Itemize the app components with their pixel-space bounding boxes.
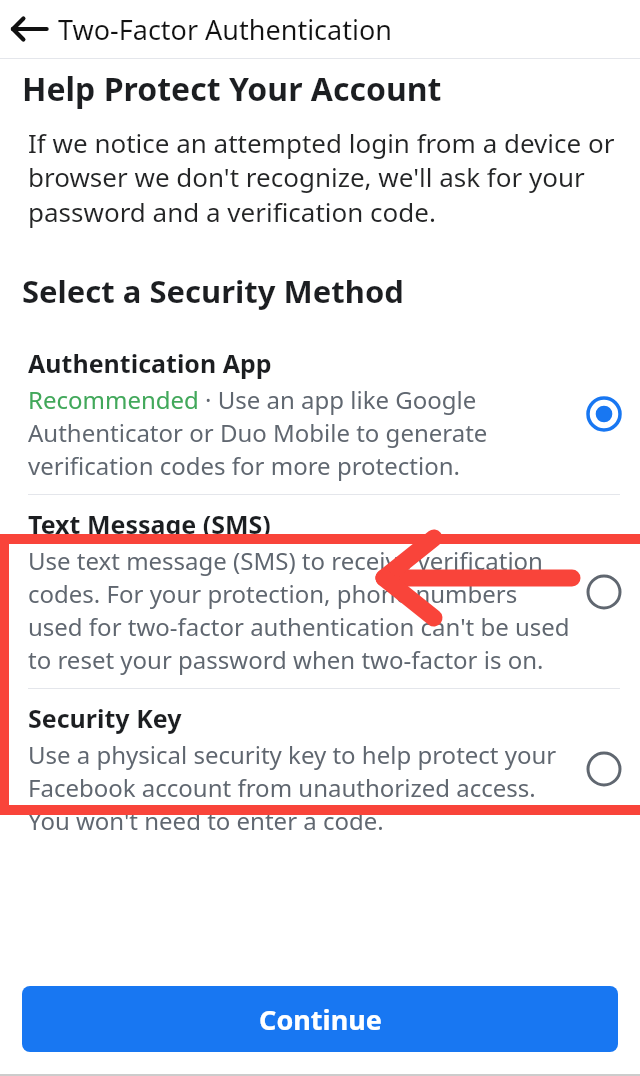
button[interactable]: Security Key [0, 689, 640, 849]
button[interactable]: Text Message (SMS) [0, 495, 640, 688]
staticText: Use a physical security key to help prot… [28, 738, 578, 837]
staticText: Select a Security Method [22, 270, 404, 312]
staticText: Help Protect Your Account [22, 67, 442, 111]
button[interactable]: Continue [22, 986, 618, 1052]
staticText: Two-Factor Authentication [58, 11, 392, 48]
staticText: If we notice an attempted login from a d… [28, 125, 618, 230]
staticText: Authentication App [28, 346, 272, 380]
button[interactable]: Back [0, 0, 58, 58]
staticText: Text Message (SMS) [28, 507, 271, 541]
staticText: Recommended · Use an app like Google Aut… [28, 383, 578, 482]
staticText: Continue [259, 1001, 382, 1038]
staticText: Security Key [28, 701, 182, 735]
button[interactable]: Authentication App [0, 334, 640, 494]
staticText: Use text message (SMS) to receive verifi… [28, 544, 578, 676]
